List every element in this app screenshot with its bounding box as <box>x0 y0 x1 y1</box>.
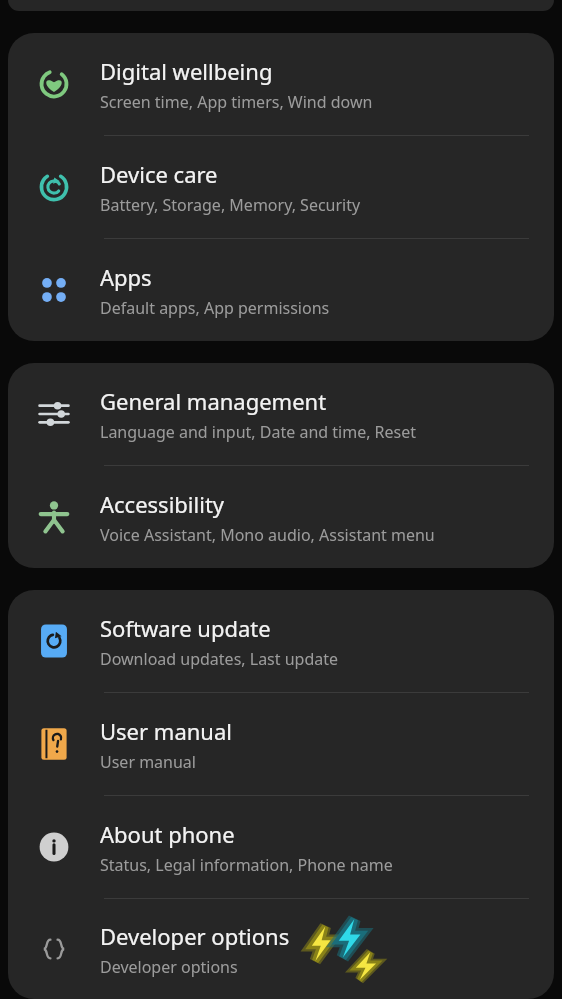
staticText: Language and input, Date and time, Reset <box>100 421 417 443</box>
staticText: About phone <box>100 819 235 849</box>
button[interactable]: Developer options <box>8 899 554 999</box>
button[interactable]: User manual <box>8 693 554 795</box>
staticText: Developer options <box>100 921 290 951</box>
staticText: Software update <box>100 613 271 643</box>
staticText: Developer options <box>100 956 238 978</box>
staticText: Status, Legal information, Phone name <box>100 854 393 876</box>
staticText: Apps <box>100 262 152 292</box>
button[interactable]: Accessibility <box>8 466 554 568</box>
staticText: Battery, Storage, Memory, Security <box>100 194 361 216</box>
button[interactable]: General management <box>8 363 554 465</box>
staticText: Device care <box>100 159 218 189</box>
staticText: User manual <box>100 716 232 746</box>
staticText: Digital wellbeing <box>100 56 273 86</box>
button[interactable]: Device care <box>8 136 554 238</box>
button[interactable]: About phone <box>8 796 554 898</box>
staticText: Screen time, App timers, Wind down <box>100 91 373 113</box>
staticText: Voice Assistant, Mono audio, Assistant m… <box>100 524 435 546</box>
staticText: Default apps, App permissions <box>100 297 330 319</box>
staticText: User manual <box>100 751 196 773</box>
button[interactable]: Digital wellbeing <box>8 33 554 135</box>
staticText: General management <box>100 386 327 416</box>
button[interactable]: Software update <box>8 590 554 692</box>
staticText: Accessibility <box>100 489 225 519</box>
button[interactable]: Apps <box>8 239 554 341</box>
staticText: Download updates, Last update <box>100 648 339 670</box>
